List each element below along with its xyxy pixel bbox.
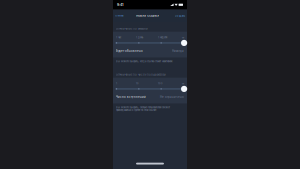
staticText: 1 неделя [158,36,167,39]
staticText: Не ограничено [160,95,184,99]
staticText: 1 день [136,36,143,39]
staticText: Вы можете выбрать, сколько пользователей… [116,106,170,112]
staticText: Будет обновлено [116,49,143,53]
staticText: НОВАЯ ССЫЛКА [136,14,159,17]
staticText: Никогда [172,49,184,53]
staticText: 9:41 [117,3,123,7]
staticText: ОГРАНИЧЕНИЕ ПО ЧИСЛУ ПОЛЬЗОВАТЕЛЕЙ [116,74,166,76]
button[interactable]: Создать [174,12,186,19]
button[interactable]: Отмена [114,12,124,19]
staticText: 1 час [116,36,121,39]
staticText: ∞ [182,36,184,39]
staticText: 100 [158,82,163,85]
staticText: ОГРАНИЧЕНИЕ ПО ВРЕМЕНИ [116,28,148,30]
staticText: Вы можете выбрать, когда ссылка станет н… [116,60,173,63]
staticText: ∞ [182,82,184,85]
staticText: Отмена [115,14,123,17]
button[interactable]: Число вступлений [113,92,187,101]
staticText: 1 [116,82,117,85]
staticText: 10 [136,82,139,85]
button[interactable]: Будет обновлено [113,46,187,55]
staticText: Число вступлений [116,95,146,99]
staticText: Создать [175,14,185,17]
